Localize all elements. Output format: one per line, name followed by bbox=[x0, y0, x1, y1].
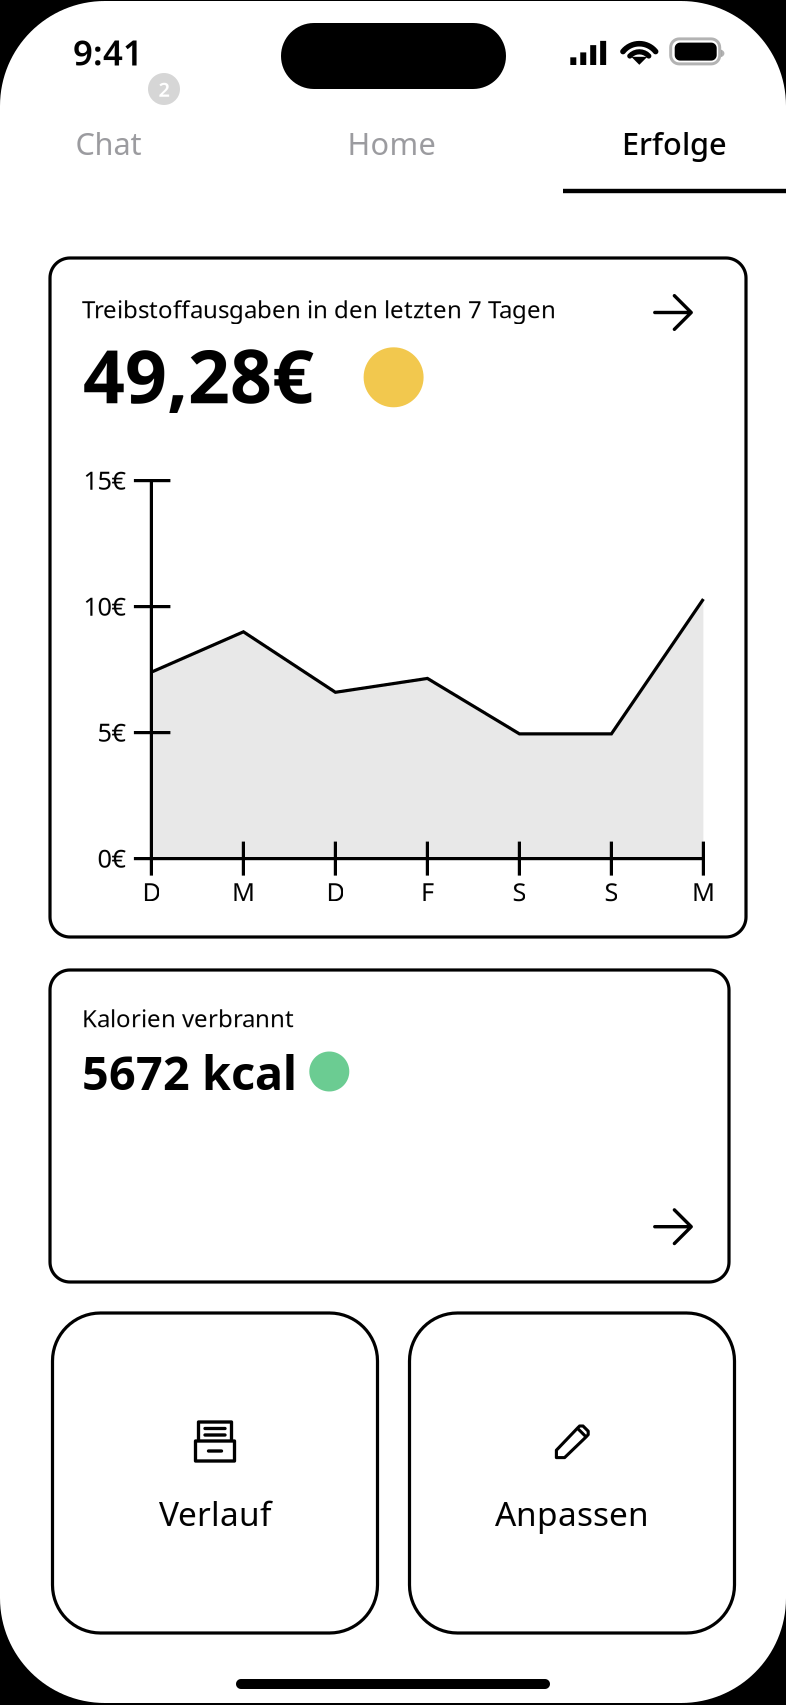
staticText: Treibstoffausgaben in den letzten 7 Tage… bbox=[82, 293, 556, 325]
button[interactable]: Anpassen bbox=[409, 1313, 734, 1633]
staticText: Home bbox=[347, 123, 435, 163]
staticText: Verlauf bbox=[159, 1491, 271, 1535]
staticText: Kalorien verbrannt bbox=[82, 1002, 294, 1034]
staticText: 2 bbox=[158, 76, 169, 102]
button[interactable]: Chat bbox=[0, 107, 250, 179]
staticText: 0€ bbox=[97, 841, 125, 875]
button[interactable]: Home bbox=[250, 107, 533, 179]
button[interactable]: Erfolge bbox=[533, 107, 786, 179]
staticText: D bbox=[142, 874, 160, 908]
button[interactable]: Treibstoffausgaben in den letzten 7 Tage… bbox=[50, 258, 746, 937]
staticText: Chat bbox=[75, 123, 141, 163]
staticText: M bbox=[692, 874, 715, 908]
staticText: 49,28€ bbox=[83, 326, 314, 423]
staticText: 10€ bbox=[83, 589, 125, 623]
staticText: M bbox=[232, 874, 255, 908]
staticText: 9:41 bbox=[73, 29, 143, 75]
staticText: F bbox=[421, 874, 434, 908]
button[interactable]: Kalorien Details bbox=[647, 1201, 699, 1253]
staticText: Erfolge bbox=[622, 123, 727, 163]
staticText: 5€ bbox=[97, 715, 125, 749]
staticText: 5672 kcal bbox=[82, 1041, 297, 1103]
staticText: 15€ bbox=[83, 463, 125, 497]
button[interactable]: 2 unread chats bbox=[148, 73, 180, 105]
staticText: D bbox=[326, 874, 344, 908]
button[interactable]: Treibstoffausgaben Details bbox=[647, 286, 699, 338]
button[interactable]: Kalorien verbrannt bbox=[50, 970, 729, 1282]
staticText: S bbox=[604, 874, 618, 908]
staticText: S bbox=[512, 874, 526, 908]
button[interactable]: Verlauf bbox=[52, 1313, 377, 1633]
staticText: Anpassen bbox=[495, 1491, 649, 1535]
